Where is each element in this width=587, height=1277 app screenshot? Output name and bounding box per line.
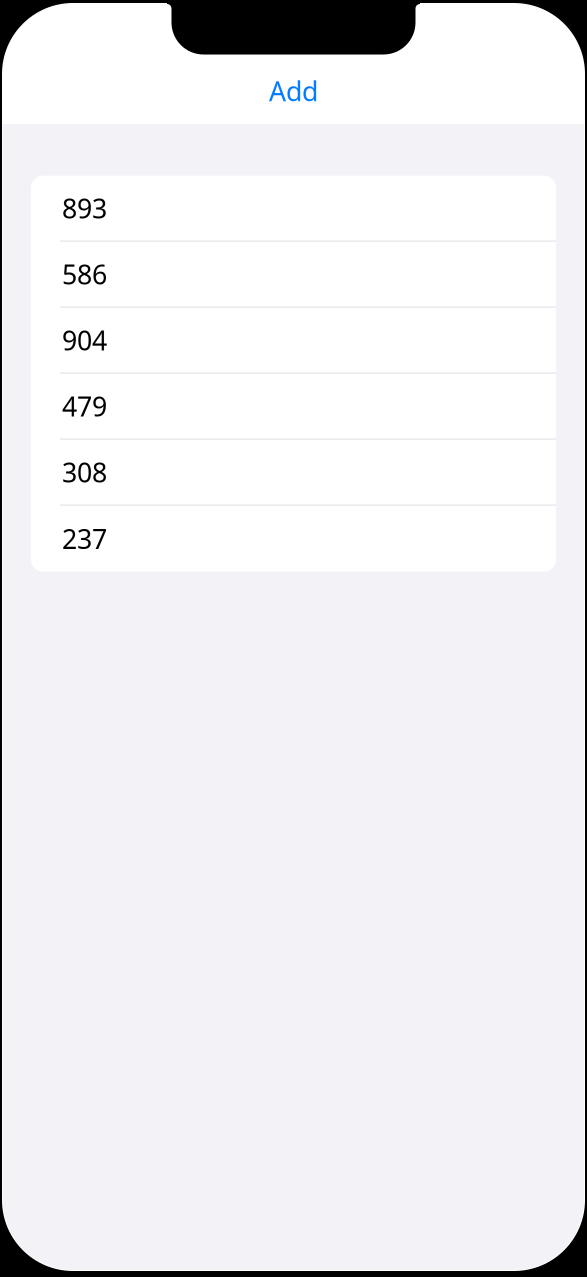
button[interactable]: 237 <box>31 506 556 572</box>
staticText: Add <box>269 73 318 109</box>
button[interactable]: 904 <box>31 308 556 374</box>
button[interactable]: 893 <box>31 176 556 242</box>
button[interactable]: 479 <box>31 374 556 440</box>
button[interactable]: 308 <box>31 440 556 506</box>
button[interactable]: 586 <box>31 242 556 308</box>
staticText: 479 <box>62 388 107 424</box>
staticText: 904 <box>62 322 107 358</box>
staticText: 237 <box>62 521 107 556</box>
staticText: 586 <box>62 256 107 292</box>
staticText: 893 <box>62 190 107 226</box>
staticText: 308 <box>62 454 107 490</box>
button[interactable]: Add <box>233 69 353 113</box>
